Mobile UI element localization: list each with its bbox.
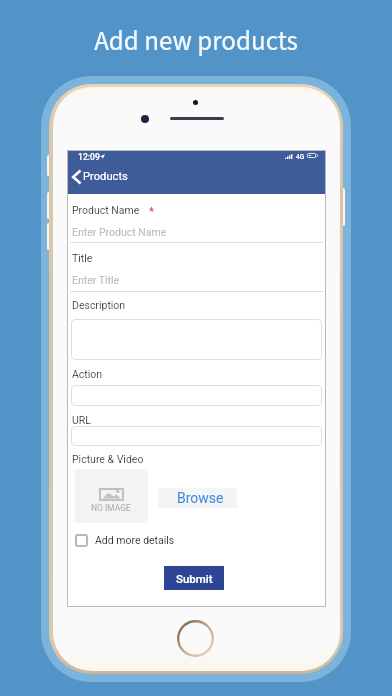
button[interactable] xyxy=(71,319,322,360)
staticText: Picture & Video xyxy=(72,453,144,465)
button[interactable]: Submit xyxy=(164,566,224,590)
staticText: URL xyxy=(72,414,91,426)
button[interactable] xyxy=(71,385,322,406)
button[interactable] xyxy=(67,194,326,242)
button[interactable]: No image selected xyxy=(75,469,148,523)
staticText: Enter Title xyxy=(72,274,120,286)
staticText: * xyxy=(149,205,154,218)
staticText: Products xyxy=(83,170,128,183)
staticText: Add more details xyxy=(95,534,175,546)
staticText: Title xyxy=(72,252,93,264)
staticText: Product Name xyxy=(72,204,140,216)
staticText: Enter Product Name xyxy=(72,226,167,238)
staticText: 12:09 xyxy=(78,152,100,162)
button[interactable] xyxy=(73,531,243,550)
staticText: Description xyxy=(72,299,126,311)
staticText: Action xyxy=(72,368,103,380)
staticText: NO IMAGE xyxy=(91,503,131,513)
button[interactable] xyxy=(71,426,322,446)
button[interactable]: Back to Products xyxy=(67,171,326,194)
staticText: Submit xyxy=(176,572,213,585)
staticText: Add new products xyxy=(94,22,298,60)
button[interactable] xyxy=(158,488,237,508)
button[interactable] xyxy=(67,245,326,291)
staticText: Browse xyxy=(177,490,224,506)
staticText: 4G xyxy=(296,153,305,161)
